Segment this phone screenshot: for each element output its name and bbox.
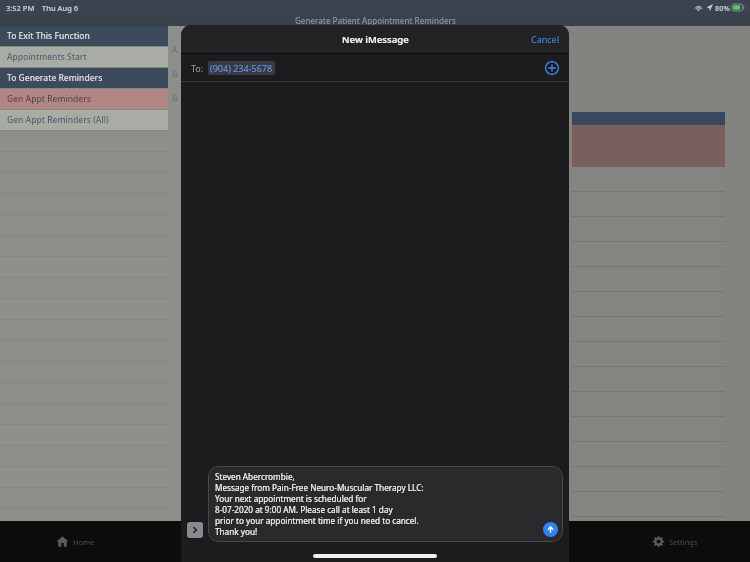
staticText: Appointments Start xyxy=(7,51,87,63)
staticText: G xyxy=(172,92,178,103)
button[interactable]: Gen Appt Reminders (All) xyxy=(0,110,168,130)
staticText: Steven Abercrombie, xyxy=(215,471,295,482)
staticText: Home xyxy=(73,537,95,547)
staticText: New iMessage xyxy=(342,33,409,46)
staticText: Your next appointment is scheduled for xyxy=(215,493,367,504)
staticText: To: xyxy=(191,62,204,74)
button[interactable]: Billing xyxy=(450,521,600,562)
staticText: Generate Patient Appointment Reminders xyxy=(295,15,456,26)
button[interactable]: Login xyxy=(150,521,300,562)
staticText: 8-07-2020 at 9:00 AM. Please call at lea… xyxy=(215,504,393,515)
staticText: Thu Aug 6 xyxy=(42,3,79,13)
staticText: 3:52 PM xyxy=(6,3,35,13)
staticText: To Generate Reminders xyxy=(7,72,103,84)
staticText: Gen Appt Reminders xyxy=(7,93,91,105)
staticText: Cancel xyxy=(531,33,560,45)
button[interactable]: Add contact xyxy=(545,61,559,75)
button[interactable]: (904) 234-5678 xyxy=(210,62,273,74)
button[interactable]: Steven Abercrombie, xyxy=(208,466,563,542)
button[interactable]: Cancel xyxy=(528,29,563,49)
button[interactable]: Gen Appt Reminders xyxy=(0,89,168,109)
staticText: prior to your appointment time if you ne… xyxy=(215,515,419,526)
button[interactable]: Show apps xyxy=(187,522,203,538)
staticText: Thank you! xyxy=(215,526,258,537)
staticText: 80% xyxy=(715,3,730,13)
staticText: G xyxy=(172,68,178,79)
staticText: Message from Pain-Free Neuro-Muscular Th… xyxy=(215,482,424,493)
staticText: Login xyxy=(224,537,244,547)
staticText: A xyxy=(172,44,178,55)
staticText: Gen Appt Reminders (All) xyxy=(7,114,109,126)
button[interactable]: To Exit This Function xyxy=(0,26,168,46)
button[interactable]: Appointments Start xyxy=(0,47,168,67)
staticText: (904) 234-5678 xyxy=(210,62,273,74)
button[interactable]: Home xyxy=(0,521,150,562)
button[interactable]: To Generate Reminders xyxy=(0,68,168,88)
button[interactable]: Send xyxy=(543,522,558,537)
staticText: Billing xyxy=(522,537,544,547)
staticText: To Exit This Function xyxy=(7,30,90,42)
button[interactable]: Settings xyxy=(600,521,750,562)
staticText: Settings xyxy=(669,537,698,547)
